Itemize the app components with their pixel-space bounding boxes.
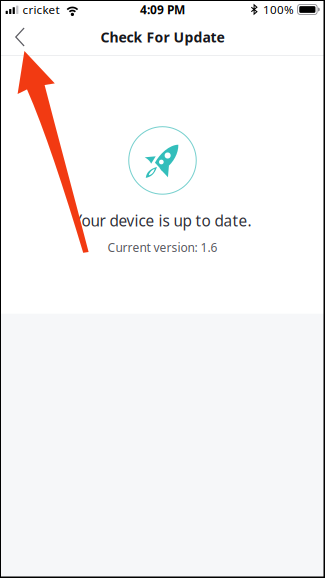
staticText: 4:09 PM	[140, 1, 185, 18]
staticText: Your device is up to date.	[73, 210, 251, 231]
button[interactable]: Back	[0, 19, 40, 55]
staticText: cricket	[22, 2, 59, 17]
staticText: Current version: 1.6	[107, 239, 217, 255]
staticText: 100%	[263, 2, 294, 17]
staticText: Check For Update	[100, 27, 224, 47]
